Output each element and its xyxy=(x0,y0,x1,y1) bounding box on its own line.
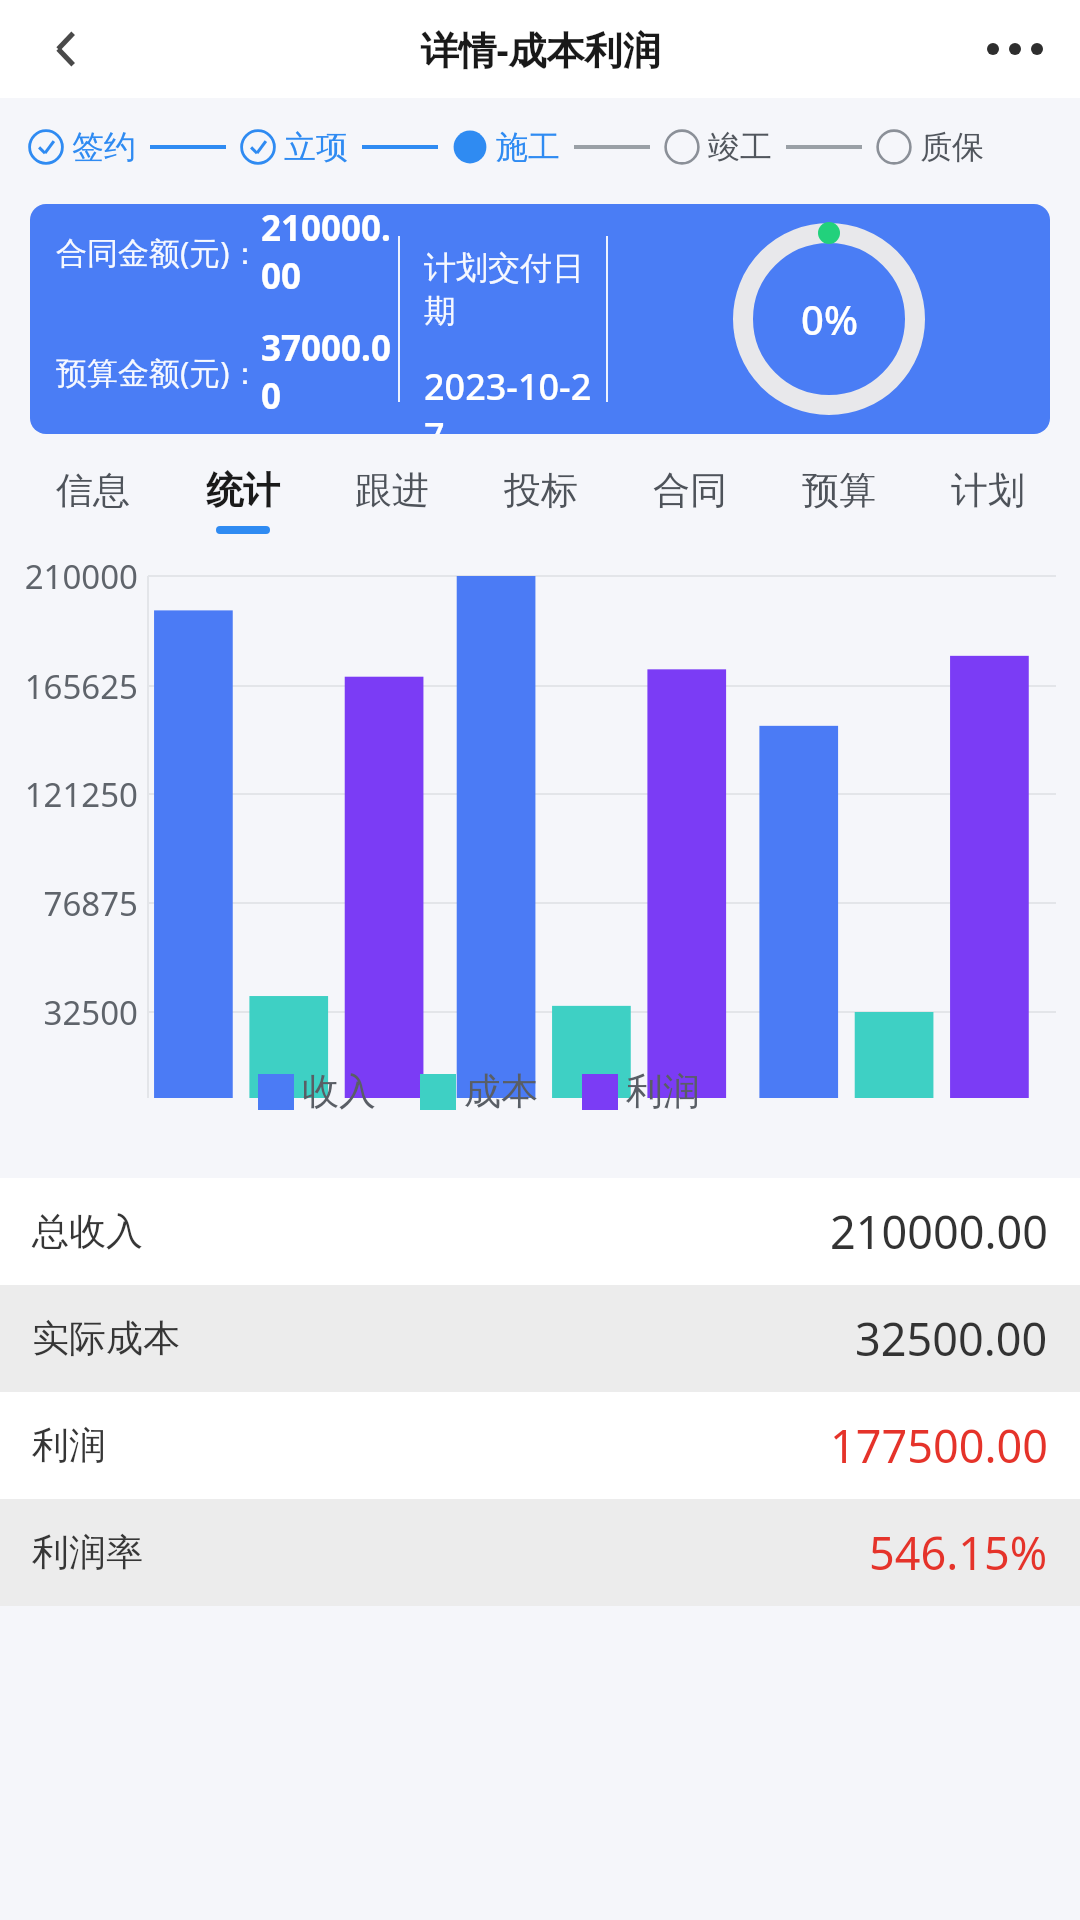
staticText: 210000.00 xyxy=(261,204,398,300)
staticText: 合同金额(元)： xyxy=(56,231,261,273)
staticText: 成本 xyxy=(464,1068,538,1115)
staticText: 实际成本 xyxy=(32,1315,180,1362)
button[interactable]: 预算 xyxy=(764,450,913,550)
button[interactable]: 立项 xyxy=(240,127,348,167)
button[interactable]: 质保 xyxy=(876,127,984,167)
button[interactable]: 成本 xyxy=(420,1068,538,1115)
staticText: 210000 xyxy=(10,554,138,599)
staticText: 信息 xyxy=(56,467,130,514)
staticText: 0% xyxy=(801,292,858,346)
button[interactable]: 实际成本 xyxy=(0,1285,1080,1392)
staticText: 32500.00 xyxy=(855,1308,1048,1369)
staticText: 177500.00 xyxy=(830,1415,1048,1476)
button[interactable]: 投标 xyxy=(466,450,615,550)
button[interactable]: Back xyxy=(22,4,112,94)
button[interactable]: 跟进 xyxy=(317,450,466,550)
staticText: 统计 xyxy=(206,467,280,514)
staticText: 210000.00 xyxy=(830,1201,1048,1262)
staticText: 竣工 xyxy=(708,127,772,167)
staticText: 76875 xyxy=(10,881,138,926)
button[interactable]: 收入 xyxy=(258,1068,376,1115)
button[interactable]: 总收入 xyxy=(0,1178,1080,1285)
staticText: 预算金额(元)： xyxy=(56,351,261,393)
staticText: 2023-10-27 xyxy=(424,362,606,434)
staticText: 跟进 xyxy=(355,467,429,514)
staticText: 投标 xyxy=(504,467,578,514)
staticText: 利润 xyxy=(32,1422,106,1469)
button[interactable]: 合同 xyxy=(615,450,764,550)
button[interactable]: 统计 xyxy=(168,450,317,550)
staticText: 计划 xyxy=(951,467,1025,514)
button[interactable]: 利润 xyxy=(0,1392,1080,1499)
staticText: 质保 xyxy=(920,127,984,167)
button[interactable]: 计划 xyxy=(913,450,1062,550)
staticText: 预算 xyxy=(802,467,876,514)
staticText: 546.15% xyxy=(869,1522,1048,1583)
button[interactable]: 信息 xyxy=(18,450,168,550)
button[interactable]: More options xyxy=(970,4,1060,94)
button[interactable]: 利润率 xyxy=(0,1499,1080,1606)
button[interactable]: 签约 xyxy=(28,127,136,167)
staticText: 165625 xyxy=(10,664,138,709)
button[interactable]: 施工 xyxy=(452,127,560,167)
button[interactable]: 合同金额(元)： xyxy=(30,204,1050,434)
staticText: 利润 xyxy=(626,1068,700,1115)
staticText: 计划交付日期 xyxy=(424,248,606,332)
button[interactable]: 利润 xyxy=(582,1068,700,1115)
staticText: 施工 xyxy=(496,127,560,167)
staticText: 总收入 xyxy=(32,1208,143,1255)
staticText: 收入 xyxy=(302,1068,376,1115)
staticText: 立项 xyxy=(284,127,348,167)
staticText: 签约 xyxy=(72,127,136,167)
staticText: 37000.00 xyxy=(261,324,398,420)
staticText: 合同 xyxy=(653,467,727,514)
staticText: 32500 xyxy=(10,990,138,1035)
button[interactable]: 竣工 xyxy=(664,127,772,167)
staticText: 详情-成本利润 xyxy=(420,23,661,75)
staticText: 121250 xyxy=(10,772,138,817)
staticText: 利润率 xyxy=(32,1529,143,1576)
